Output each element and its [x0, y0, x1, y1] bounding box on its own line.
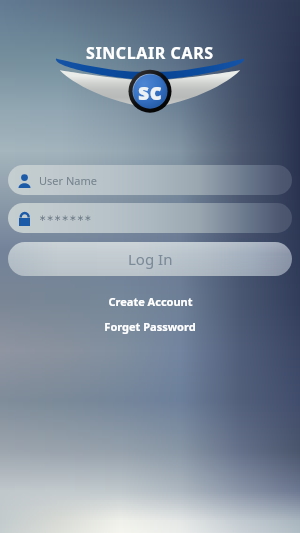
staticText: User Name	[39, 173, 97, 188]
staticText: ∗∗∗∗∗∗∗	[39, 213, 92, 223]
button[interactable]: Create Account	[100, 292, 201, 311]
button[interactable]: User Name	[8, 165, 292, 195]
button[interactable]: Log In	[8, 242, 292, 276]
button[interactable]: ∗∗∗∗∗∗∗	[8, 203, 292, 233]
staticText: SINCLAIR CARS	[86, 42, 214, 64]
button[interactable]: Forget Password	[96, 317, 204, 336]
staticText: sc	[138, 76, 163, 106]
staticText: Log In	[128, 249, 173, 269]
